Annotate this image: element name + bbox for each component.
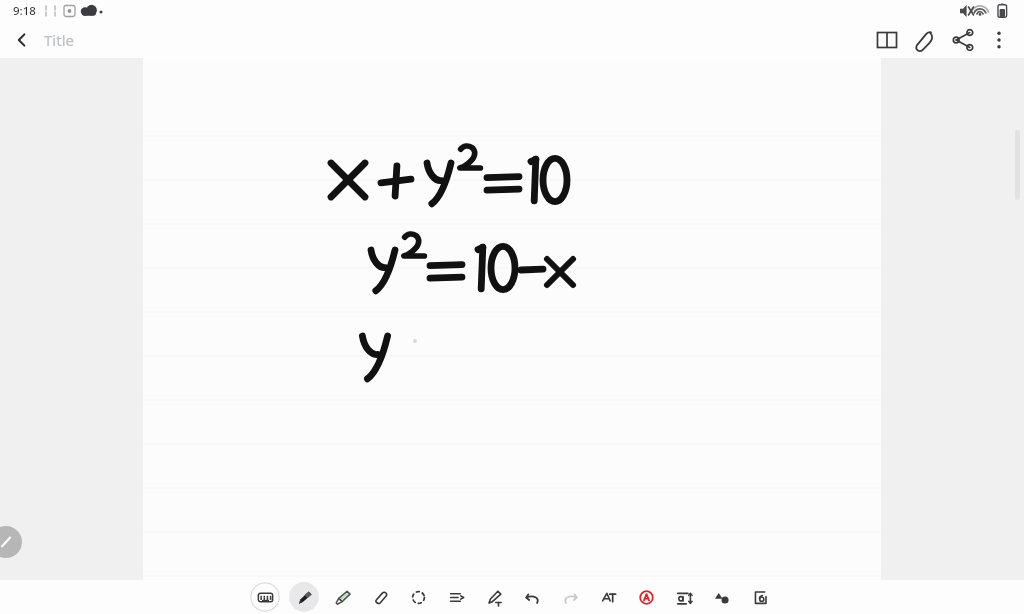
button[interactable]: Select	[403, 582, 433, 612]
button[interactable]: Spell check	[631, 582, 661, 612]
button[interactable]: Redo	[555, 582, 585, 612]
button[interactable]: Pen	[289, 582, 319, 612]
button[interactable]: More options	[982, 23, 1016, 57]
button[interactable]: Shapes	[707, 582, 737, 612]
staticText: 9:18	[13, 3, 36, 19]
button[interactable]: Keyboard	[250, 582, 280, 612]
button[interactable]: Convert to text	[441, 582, 471, 612]
button[interactable]: Split view	[870, 23, 904, 57]
button[interactable]: Attach	[908, 23, 942, 57]
button[interactable]: Share	[946, 23, 980, 57]
staticText: Title	[44, 30, 74, 50]
button[interactable]: Undo	[517, 582, 547, 612]
button[interactable]: Text pen	[479, 582, 509, 612]
button[interactable]: Eraser	[365, 582, 395, 612]
button[interactable]: Handwriting to text	[593, 582, 623, 612]
button[interactable]: Pen tool	[0, 526, 22, 558]
button[interactable]: Back	[0, 22, 44, 58]
button[interactable]: Title	[44, 30, 74, 50]
button[interactable]: Page lock	[745, 582, 775, 612]
button[interactable]: Highlighter	[327, 582, 357, 612]
button[interactable]	[0, 58, 143, 580]
button[interactable]: Text size	[669, 582, 699, 612]
